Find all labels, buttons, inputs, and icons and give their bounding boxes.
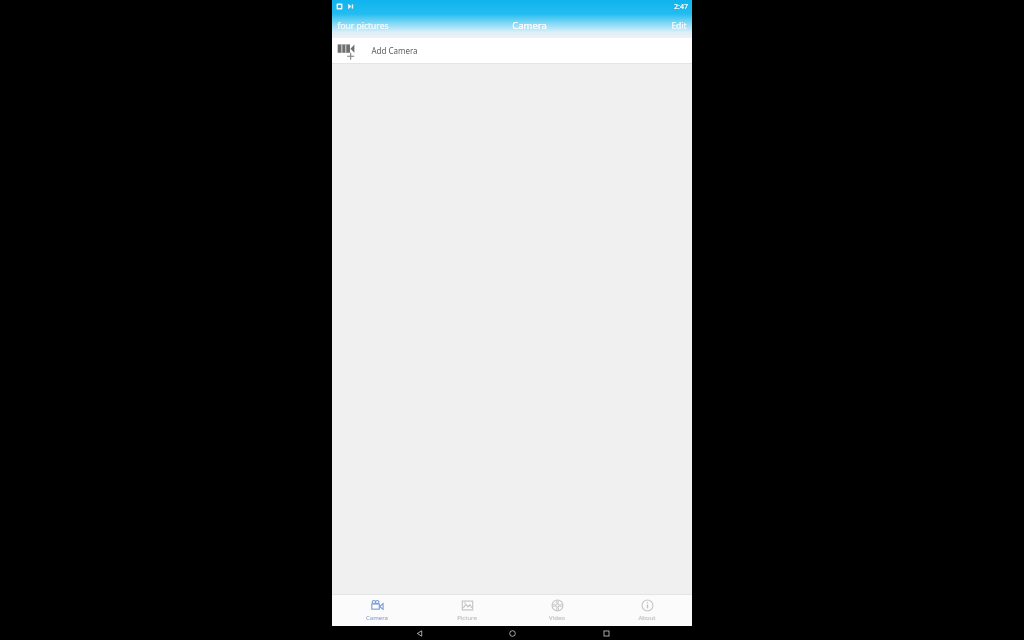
button[interactable]: Back — [412, 626, 426, 640]
staticText: Edit — [671, 20, 687, 32]
button[interactable]: Camera — [332, 595, 422, 626]
button[interactable]: Edit — [671, 20, 687, 32]
button[interactable]: Add Camera — [332, 38, 692, 63]
staticText: Video — [549, 614, 565, 622]
staticText: four pictures — [337, 20, 389, 32]
button[interactable]: four pictures — [337, 20, 389, 32]
staticText: About — [638, 614, 656, 622]
button[interactable]: Picture — [422, 595, 512, 626]
button[interactable]: About — [602, 595, 692, 626]
button[interactable]: Recent apps — [599, 626, 613, 640]
button[interactable]: Home — [505, 626, 519, 640]
button[interactable]: Video — [512, 595, 602, 626]
staticText: Add Camera — [371, 45, 418, 56]
staticText: Camera — [366, 614, 388, 622]
staticText: Picture — [457, 614, 477, 622]
staticText: 2:47 — [674, 2, 688, 12]
staticText: Camera — [512, 19, 547, 32]
